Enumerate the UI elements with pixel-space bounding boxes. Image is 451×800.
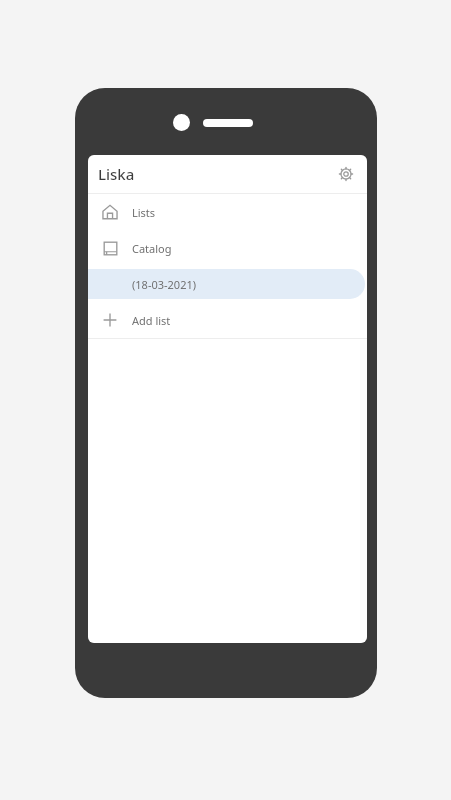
button[interactable]: Settings [333, 161, 359, 187]
staticText: Add list [132, 313, 171, 328]
button[interactable]: (18-03-2021) [88, 266, 367, 302]
staticText: Lists [132, 205, 156, 220]
staticText: Catalog [132, 241, 172, 256]
staticText: Liska [98, 164, 135, 184]
button[interactable]: Catalog [88, 230, 367, 266]
button[interactable]: Add list [88, 302, 367, 338]
button[interactable]: Lists [88, 194, 367, 230]
staticText: (18-03-2021) [132, 277, 197, 292]
button[interactable]: Edit [325, 163, 357, 195]
